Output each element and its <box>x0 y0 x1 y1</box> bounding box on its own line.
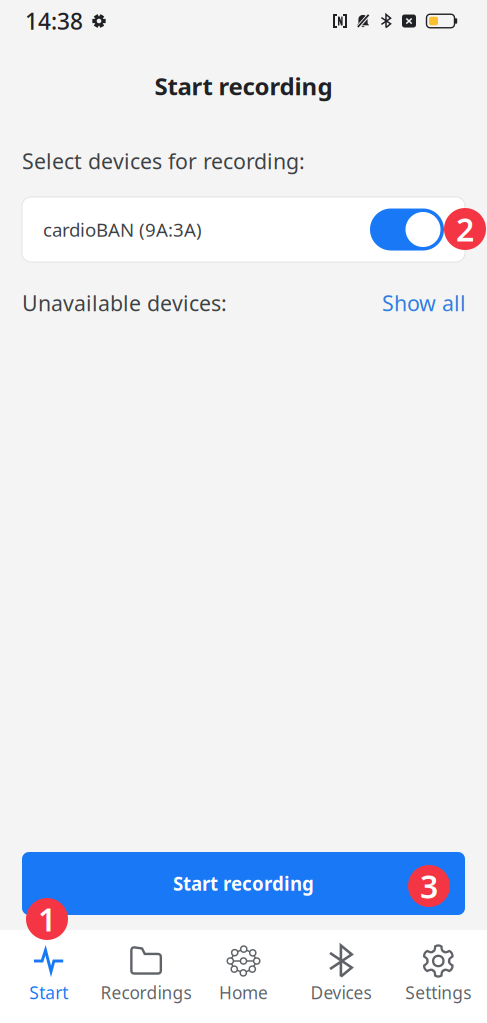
button[interactable]: Settings <box>390 946 487 1004</box>
button[interactable]: Start recording <box>22 852 465 915</box>
button[interactable]: Home <box>195 946 292 1004</box>
button[interactable]: Show all <box>382 289 466 317</box>
staticText: Start recording <box>154 70 332 102</box>
button[interactable]: Devices <box>292 946 390 1004</box>
staticText: Settings <box>405 981 471 1004</box>
staticText: Select devices for recording: <box>22 147 305 175</box>
staticText: 1 <box>38 898 56 940</box>
staticText: Home <box>219 981 268 1004</box>
button[interactable]: Start <box>0 946 97 1004</box>
staticText: 2 <box>456 208 474 250</box>
staticText: Start <box>29 981 68 1004</box>
staticText: 3 <box>420 865 438 907</box>
staticText: Start recording <box>173 871 314 896</box>
staticText: cardioBAN (9A:3A) <box>43 217 202 242</box>
staticText: 14:38 <box>25 6 83 36</box>
staticText: Unavailable devices: <box>22 289 227 317</box>
staticText: Show all <box>382 289 466 317</box>
button[interactable]: Recordings <box>97 946 195 1004</box>
staticText: Devices <box>310 981 371 1004</box>
staticText: Recordings <box>101 981 192 1004</box>
